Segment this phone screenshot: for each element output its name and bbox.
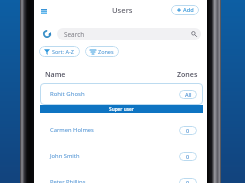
button[interactable]: Peter Phillips [34,169,207,183]
staticText: John Smith [50,152,80,160]
button[interactable]: Refresh [40,27,53,40]
staticText: Zones [177,70,198,80]
button[interactable]: Sort: A-Z [39,46,80,57]
button[interactable]: 0 [179,152,197,161]
staticText: Zones [98,48,114,55]
button[interactable]: Open navigation menu [36,4,51,19]
button[interactable]: Add [171,5,199,15]
button[interactable]: 0 [179,126,197,135]
button[interactable]: All [179,90,197,99]
staticText: Rohit Ghosh [50,90,85,98]
button[interactable]: Rohit Ghosh [40,83,203,105]
button[interactable]: Zones [85,46,119,57]
button[interactable]: 0 [179,178,197,183]
staticText: Name [45,70,66,80]
staticText: Add [183,6,194,14]
staticText: Sort: A-Z [52,48,74,55]
staticText: All [185,91,192,98]
staticText: 0 [186,153,190,160]
staticText: Search [64,30,85,39]
button[interactable]: John Smith [34,143,207,169]
button[interactable]: Carmen Holmes [34,117,207,143]
staticText: Super user [109,106,134,113]
staticText: Carmen Holmes [50,126,94,134]
staticText: Users [112,5,133,15]
staticText: 0 [186,127,190,134]
button[interactable]: Search [57,28,201,40]
staticText: 0 [186,179,190,183]
staticText: Peter Phillips [50,178,86,183]
